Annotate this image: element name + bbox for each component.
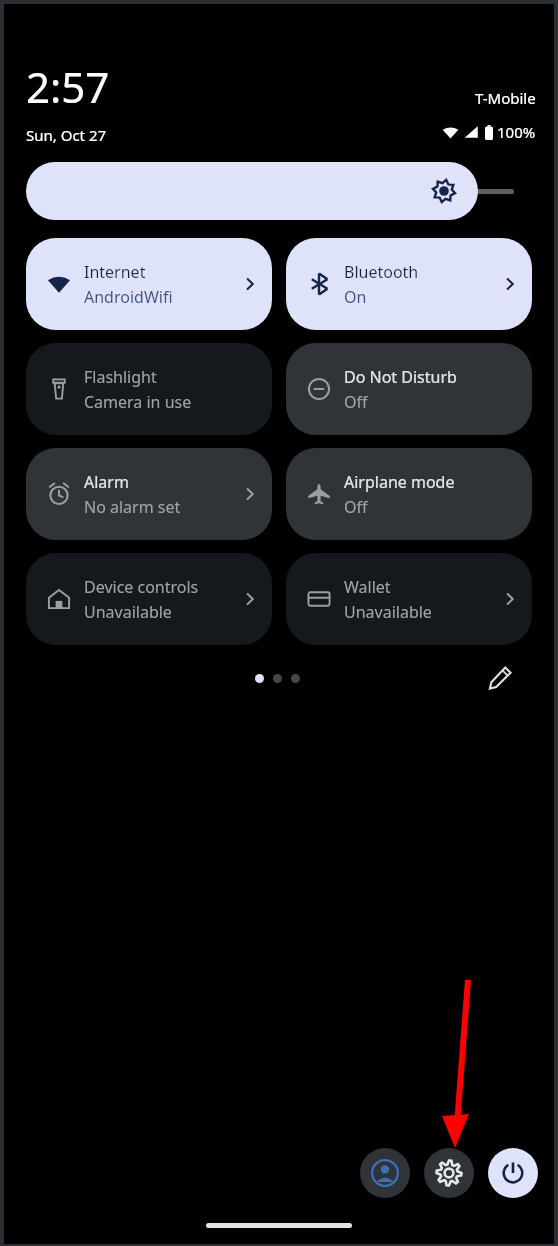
staticText: 100% [497,122,536,142]
staticText: Bluetooth [344,261,419,283]
button[interactable]: Flashlight [26,343,272,435]
staticText: Wallet [344,576,391,598]
button[interactable]: Edit tiles [480,658,520,698]
button[interactable]: Device controls [26,553,272,645]
staticText: Unavailable [344,601,432,623]
staticText: Camera in use [84,391,192,413]
staticText: Alarm [84,471,129,493]
staticText: Do Not Disturb [344,366,457,388]
staticText: 2:57 [26,58,110,115]
button[interactable]: Airplane mode [286,448,532,540]
staticText: Off [344,391,368,413]
staticText: Unavailable [84,601,172,623]
staticText: Airplane mode [344,471,455,493]
button[interactable]: Power [488,1148,538,1198]
staticText: Flashlight [84,366,157,388]
staticText: T-Mobile [475,88,536,108]
staticText: No alarm set [84,496,181,518]
button[interactable]: Do Not Disturb [286,343,532,435]
button[interactable]: Internet [26,238,272,330]
staticText: Sun, Oct 27 [26,125,107,145]
staticText: AndroidWifi [84,286,173,308]
staticText: On [344,286,367,308]
staticText: Device controls [84,576,199,598]
button[interactable]: Settings [424,1148,474,1198]
staticText: Internet [84,261,146,283]
button[interactable] [26,162,478,220]
staticText: Off [344,496,368,518]
button[interactable]: Wallet [286,553,532,645]
button[interactable]: Bluetooth [286,238,532,330]
button[interactable]: Alarm [26,448,272,540]
button[interactable]: User [360,1148,410,1198]
